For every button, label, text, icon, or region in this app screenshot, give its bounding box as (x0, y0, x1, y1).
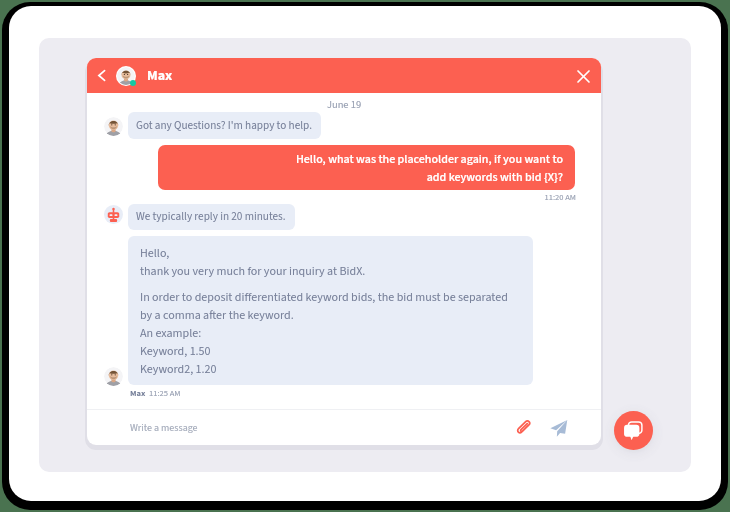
staticText: We typically reply in 20 minutes. (136, 209, 286, 225)
button[interactable]: Open chat (614, 411, 653, 450)
staticText: Max (130, 387, 146, 399)
staticText: Write a message (130, 421, 198, 435)
staticText: Hello, what was the placeholder again, i… (168, 151, 563, 186)
staticText: June 19 (87, 97, 601, 112)
staticText: In order to deposit differentiated keywo… (140, 289, 508, 378)
button[interactable]: Back (91, 65, 112, 86)
staticText: Got any Questions? I'm happy to help. (136, 118, 312, 134)
staticText: Max (147, 66, 173, 86)
button[interactable]: Attach file (514, 418, 534, 438)
staticText: Hello, thank you very much for your inqu… (140, 245, 366, 280)
button[interactable]: Send (549, 418, 569, 438)
staticText: 11:25 AM (149, 387, 181, 399)
button[interactable]: Close (571, 64, 595, 88)
staticText: 11:20 AM (87, 191, 576, 203)
